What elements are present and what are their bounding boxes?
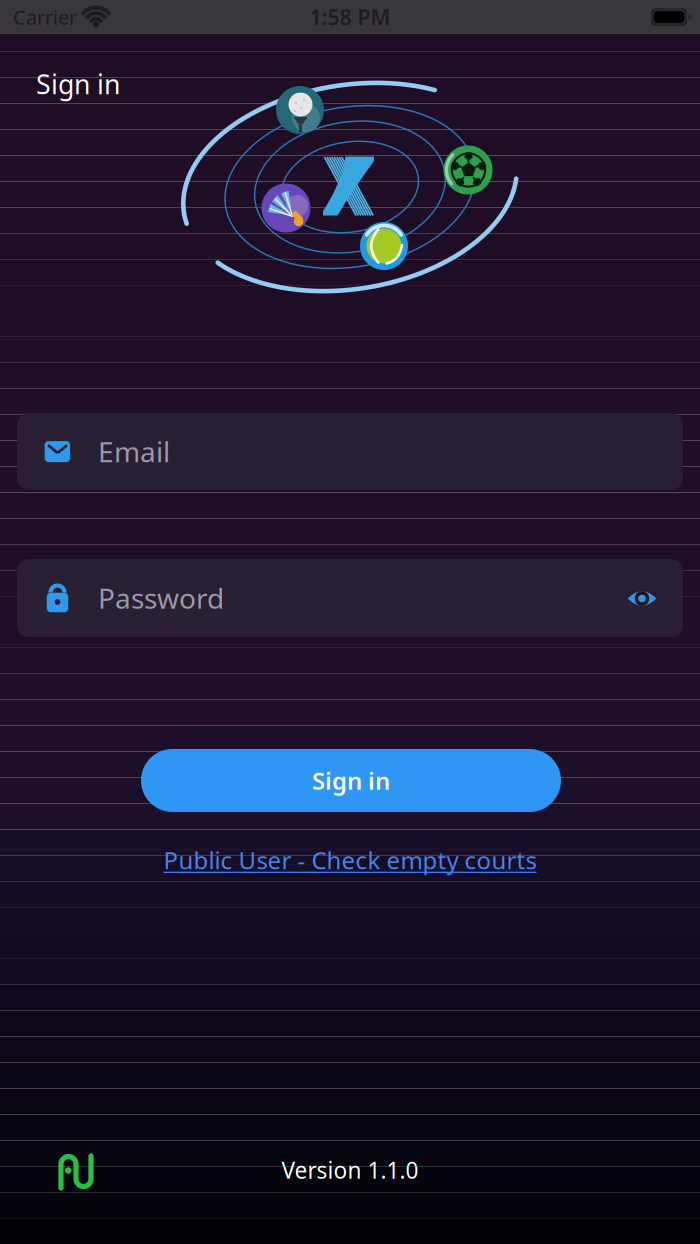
staticText: Email (98, 433, 170, 470)
staticText: Version 1.1.0 (281, 1155, 418, 1185)
staticText: Sign in (312, 765, 390, 796)
staticText: 1:58 PM (309, 3, 390, 31)
button[interactable]: Show password (617, 578, 667, 618)
staticText: Public User - Check empty courts (163, 844, 536, 876)
staticText: Password (98, 579, 224, 617)
staticText: Sign in (36, 66, 120, 102)
staticText: Carrier (13, 4, 77, 30)
button[interactable]: Public User - Check empty courts (163, 844, 536, 876)
button[interactable]: Sign in (141, 749, 561, 812)
